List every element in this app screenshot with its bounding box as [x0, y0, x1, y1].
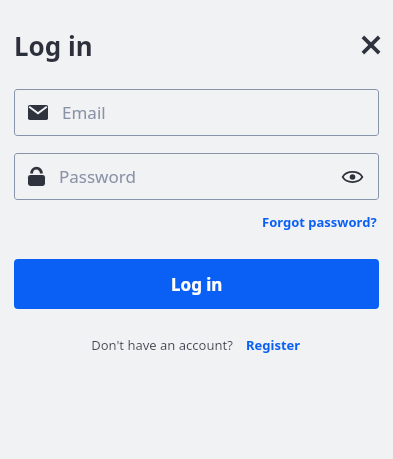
button[interactable]: Password [14, 153, 379, 200]
button[interactable]: Forgot password? [260, 209, 379, 235]
staticText: Password [59, 165, 339, 188]
button[interactable]: Show password [339, 164, 365, 190]
button[interactable]: Email [14, 89, 379, 136]
button[interactable]: Register [244, 332, 303, 358]
button[interactable]: Log in [14, 259, 379, 309]
staticText: Email [62, 101, 365, 124]
staticText: Forgot password? [262, 213, 377, 231]
staticText: Register [246, 336, 301, 354]
staticText: Log in [171, 273, 223, 296]
staticText: Don't have an account? [91, 336, 233, 354]
button[interactable]: Close [349, 23, 393, 67]
staticText: Log in [14, 28, 93, 63]
